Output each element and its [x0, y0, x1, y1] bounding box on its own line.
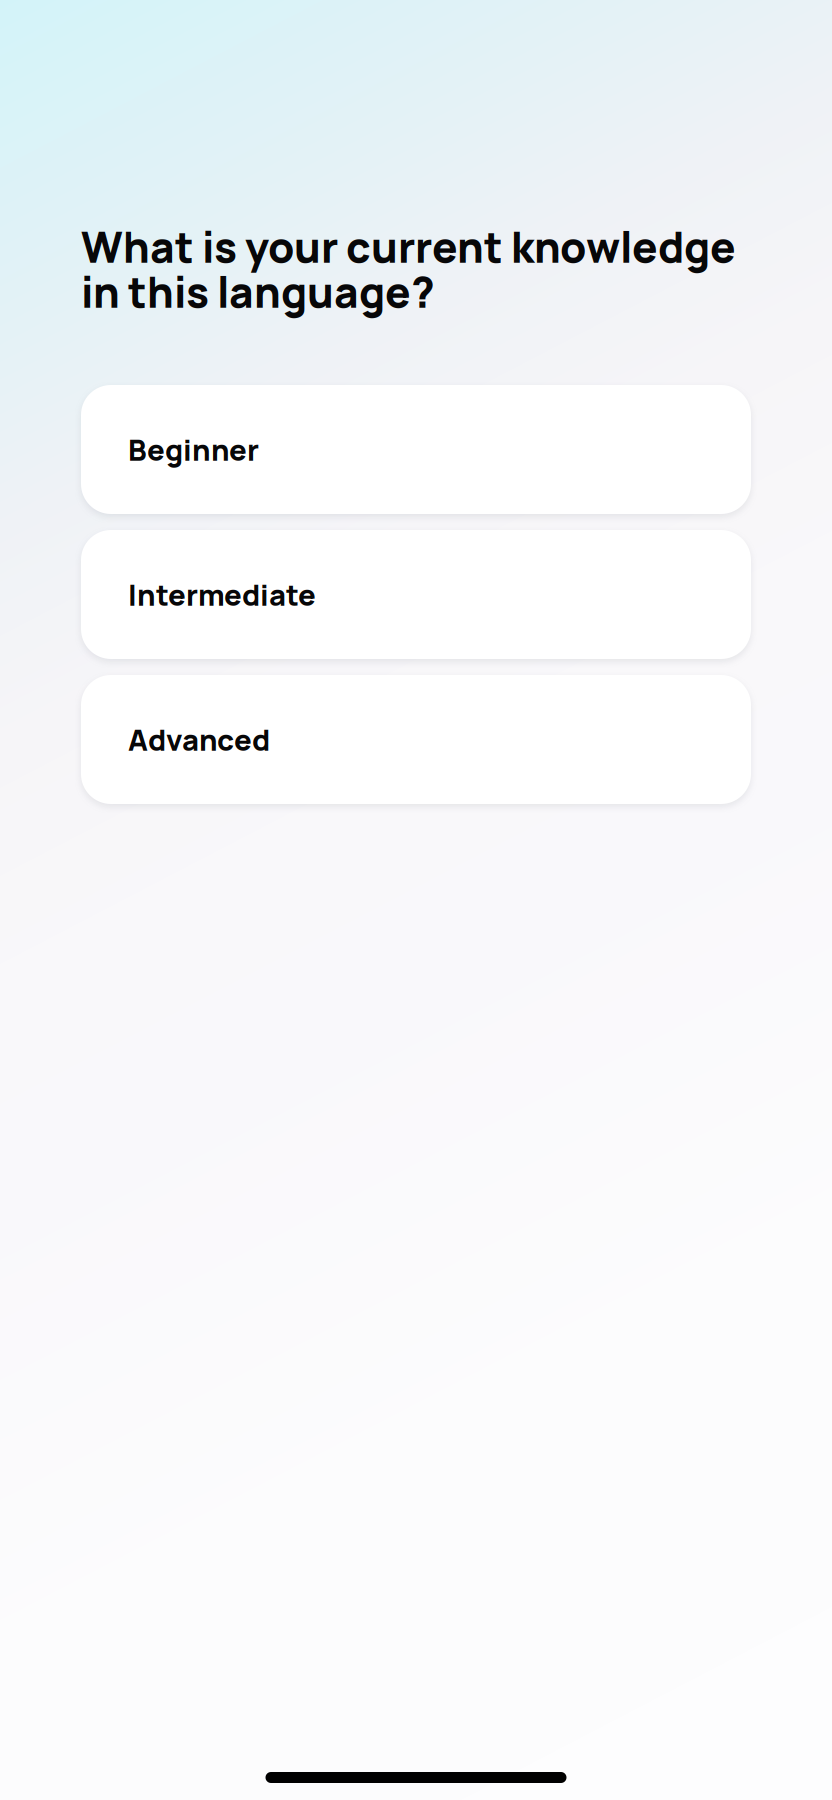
- button[interactable]: Beginner: [81, 385, 751, 514]
- staticText: Beginner: [128, 430, 259, 469]
- button[interactable]: Intermediate: [81, 530, 751, 659]
- staticText: in this language?: [81, 263, 435, 320]
- button[interactable]: Advanced: [81, 675, 751, 804]
- staticText: Advanced: [128, 720, 270, 759]
- staticText: Intermediate: [128, 575, 316, 614]
- staticText: What is your current knowledge: [81, 218, 736, 275]
